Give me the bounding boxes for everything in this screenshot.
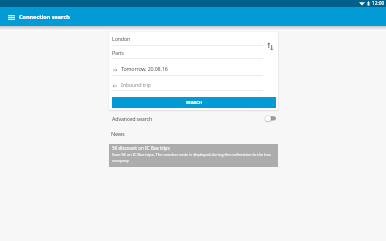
button[interactable]: Paris [112,46,263,59]
staticText: 5€ discount on IC Bus trips [112,145,170,151]
staticText: News [111,130,125,138]
staticText: London [112,35,131,42]
button[interactable]: SEARCH [112,97,276,108]
staticText: 12:00 [372,0,385,7]
button[interactable]: Inbound trip [112,76,263,91]
button[interactable]: Tomorrow, 20.08.16 [112,59,263,76]
staticText: Inbound trip [121,81,151,88]
staticText: Save 5€ on IC Bus trips. The voucher cod… [112,152,275,163]
staticText: Advanced search [112,115,153,122]
staticText: Tomorrow, 20.08.16 [121,65,168,72]
button[interactable]: Advanced search [112,113,278,124]
button[interactable]: Swap origin and destination [264,40,276,52]
button[interactable]: Advanced search toggle [265,114,277,124]
staticText: Paris [112,49,124,56]
staticText: SEARCH [186,100,203,106]
button[interactable]: 5€ discount on IC Bus trips [109,144,278,167]
button[interactable]: London [112,32,263,46]
button[interactable]: Open navigation drawer [5,11,17,23]
staticText: Connection search [19,13,70,20]
